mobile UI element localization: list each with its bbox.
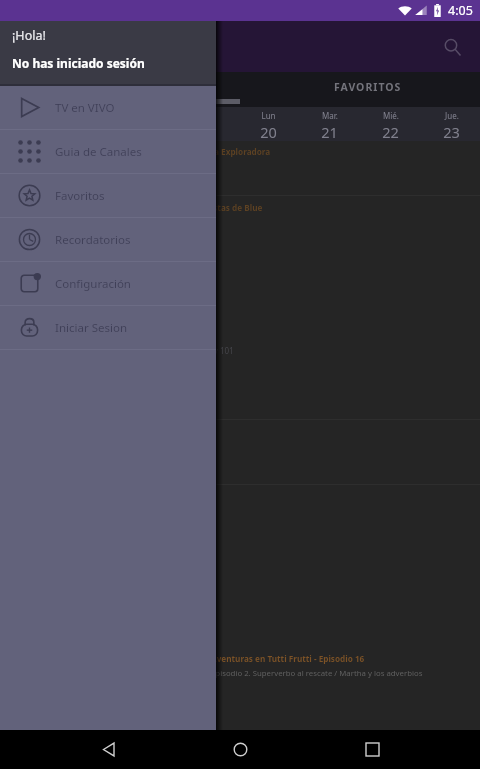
button[interactable]: Jue.: [421, 107, 480, 141]
button[interactable]: Recordatorios: [0, 218, 216, 261]
staticText: 21: [321, 122, 338, 141]
button[interactable]: Configuración: [0, 262, 216, 305]
button[interactable]: TV en VIVO: [0, 86, 216, 129]
staticText: Zoey 101: [200, 345, 234, 356]
staticText: 23: [443, 122, 460, 141]
button[interactable]: Back: [86, 730, 132, 769]
button[interactable]: Lun: [238, 107, 299, 141]
staticText: Mié.: [383, 110, 399, 121]
button[interactable]: Dom: [177, 107, 238, 141]
button[interactable]: Home: [217, 730, 263, 769]
staticText: Jue.: [445, 110, 459, 121]
button[interactable]: Iniciar Sesion: [0, 306, 216, 349]
staticText: Configuración: [55, 276, 131, 292]
staticText: Mar.: [322, 110, 338, 121]
staticText: No has iniciado sesión: [12, 55, 145, 71]
button[interactable]: Search: [432, 27, 472, 67]
staticText: 20: [260, 122, 277, 141]
staticText: 22: [382, 122, 399, 141]
staticText: Favoritos: [55, 188, 105, 204]
staticText: Las Pistas de Blue: [190, 202, 263, 213]
staticText: Iniciar Sesion: [55, 320, 127, 336]
button[interactable]: Mié.: [360, 107, 421, 141]
staticText: Dora la Exploradora: [190, 146, 271, 157]
staticText: Aventuras en Tutti Frutti - Episodio 16: [211, 653, 365, 664]
staticText: Dom: [198, 110, 217, 121]
staticText: FAVORITOS: [334, 80, 402, 94]
staticText: 4:05: [448, 2, 473, 19]
button[interactable]: Mar.: [299, 107, 360, 141]
staticText: ¡Hola!: [12, 27, 46, 44]
staticText: Guia de Canales: [55, 144, 142, 160]
button[interactable]: Favoritos: [0, 174, 216, 217]
staticText: Lun: [261, 110, 276, 121]
staticText: Recordatorios: [55, 232, 131, 248]
staticText: Episodio 2. Superverbo al rescate / Mart…: [211, 668, 423, 679]
button[interactable]: Guia de Canales: [0, 130, 216, 173]
staticText: TV en VIVO: [55, 100, 115, 116]
button[interactable]: Recent apps: [349, 730, 395, 769]
